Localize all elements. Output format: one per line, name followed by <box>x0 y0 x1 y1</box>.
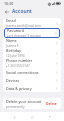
button[interactable]: Email <box>3 18 61 28</box>
staticText: 12 June 1993 <box>6 54 25 58</box>
staticText: Account <box>12 8 32 15</box>
staticText: permanently <box>6 105 25 109</box>
button[interactable]: Social connections <box>3 68 61 76</box>
button[interactable]: Devices <box>3 76 61 84</box>
staticText: Email <box>6 18 16 23</box>
button[interactable]: Delete <box>45 100 58 107</box>
staticText: Password <box>7 28 24 33</box>
staticText: +1 202 555 0147 <box>6 64 30 68</box>
button[interactable]: Recent apps <box>46 113 54 121</box>
staticText: Last changed 3 mo ago <box>7 34 41 38</box>
staticText: Phone number <box>6 58 33 63</box>
staticText: joanna.smith@mail.com <box>6 24 42 28</box>
button[interactable]: Back <box>3 8 10 15</box>
staticText: Birthday <box>6 48 22 53</box>
staticText: Delete your account <box>6 99 42 104</box>
staticText: Devices <box>6 78 20 83</box>
button[interactable]: Birthday <box>3 48 61 58</box>
button[interactable]: Home <box>28 113 36 121</box>
staticText: 10:30 <box>4 1 14 6</box>
staticText: Joanna S. <box>6 44 20 48</box>
staticText: Data & privacy <box>6 86 32 91</box>
button[interactable]: Name <box>3 38 61 48</box>
button[interactable]: Back <box>10 113 18 121</box>
button[interactable]: Delete your account <box>3 98 61 109</box>
staticText: Name <box>6 38 17 43</box>
staticText: Social connections <box>6 70 39 75</box>
button[interactable]: Data & privacy <box>3 84 61 92</box>
staticText: Delete <box>46 101 57 106</box>
button[interactable]: Password <box>4 28 60 38</box>
button[interactable]: Phone number <box>3 58 61 68</box>
